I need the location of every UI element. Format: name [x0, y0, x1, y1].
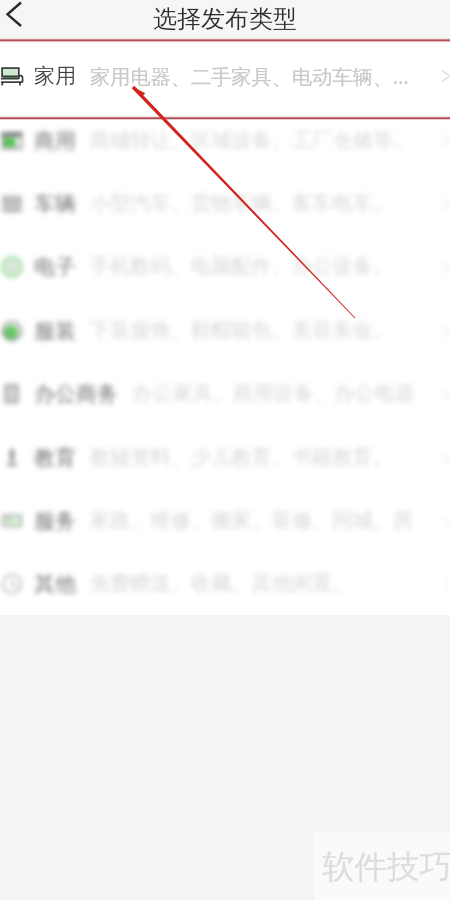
staticText: 家政、维修、搬家、装修、同城、房: [90, 508, 436, 533]
button[interactable]: 电子: [0, 235, 450, 298]
button[interactable]: 服务: [0, 489, 450, 552]
staticText: 办公家具、商用设备、办公电器: [132, 381, 436, 406]
button[interactable]: 商用: [0, 109, 450, 172]
staticText: 家用: [34, 63, 76, 89]
button[interactable]: 教育: [0, 426, 450, 489]
staticText: 小型汽车、货物车辆、客车电车。: [90, 191, 436, 216]
button[interactable]: 办公商务: [0, 362, 450, 425]
staticText: 教育: [34, 445, 76, 471]
staticText: 其他: [34, 571, 76, 597]
staticText: 服装: [34, 318, 76, 344]
staticText: 下装服饰、鞋帽箱包、美容美妆。: [90, 318, 436, 343]
staticText: 商铺转让、区域设备、工厂仓储等。: [90, 128, 436, 153]
staticText: 选择发布类型: [153, 4, 297, 34]
staticText: 软件技巧: [322, 847, 450, 888]
staticText: 车辆: [34, 191, 76, 217]
staticText: 免费赠送、收藏、其他闲置。: [90, 571, 436, 596]
staticText: 教辅资料、少儿教育、书籍教育。: [90, 445, 436, 470]
button[interactable]: 家用: [0, 43, 450, 109]
staticText: 办公商务: [34, 381, 118, 407]
staticText: 家用电器、二手家具、电动车辆、…: [90, 62, 436, 90]
staticText: 电子: [34, 254, 76, 280]
staticText: 商用: [34, 128, 76, 154]
staticText: 服务: [34, 508, 76, 534]
button[interactable]: 车辆: [0, 172, 450, 235]
button[interactable]: 服装: [0, 299, 450, 362]
button[interactable]: 其他: [0, 552, 450, 615]
button[interactable]: Back: [0, 0, 34, 30]
staticText: 手机数码、电脑配件、办公设备。: [90, 254, 436, 279]
